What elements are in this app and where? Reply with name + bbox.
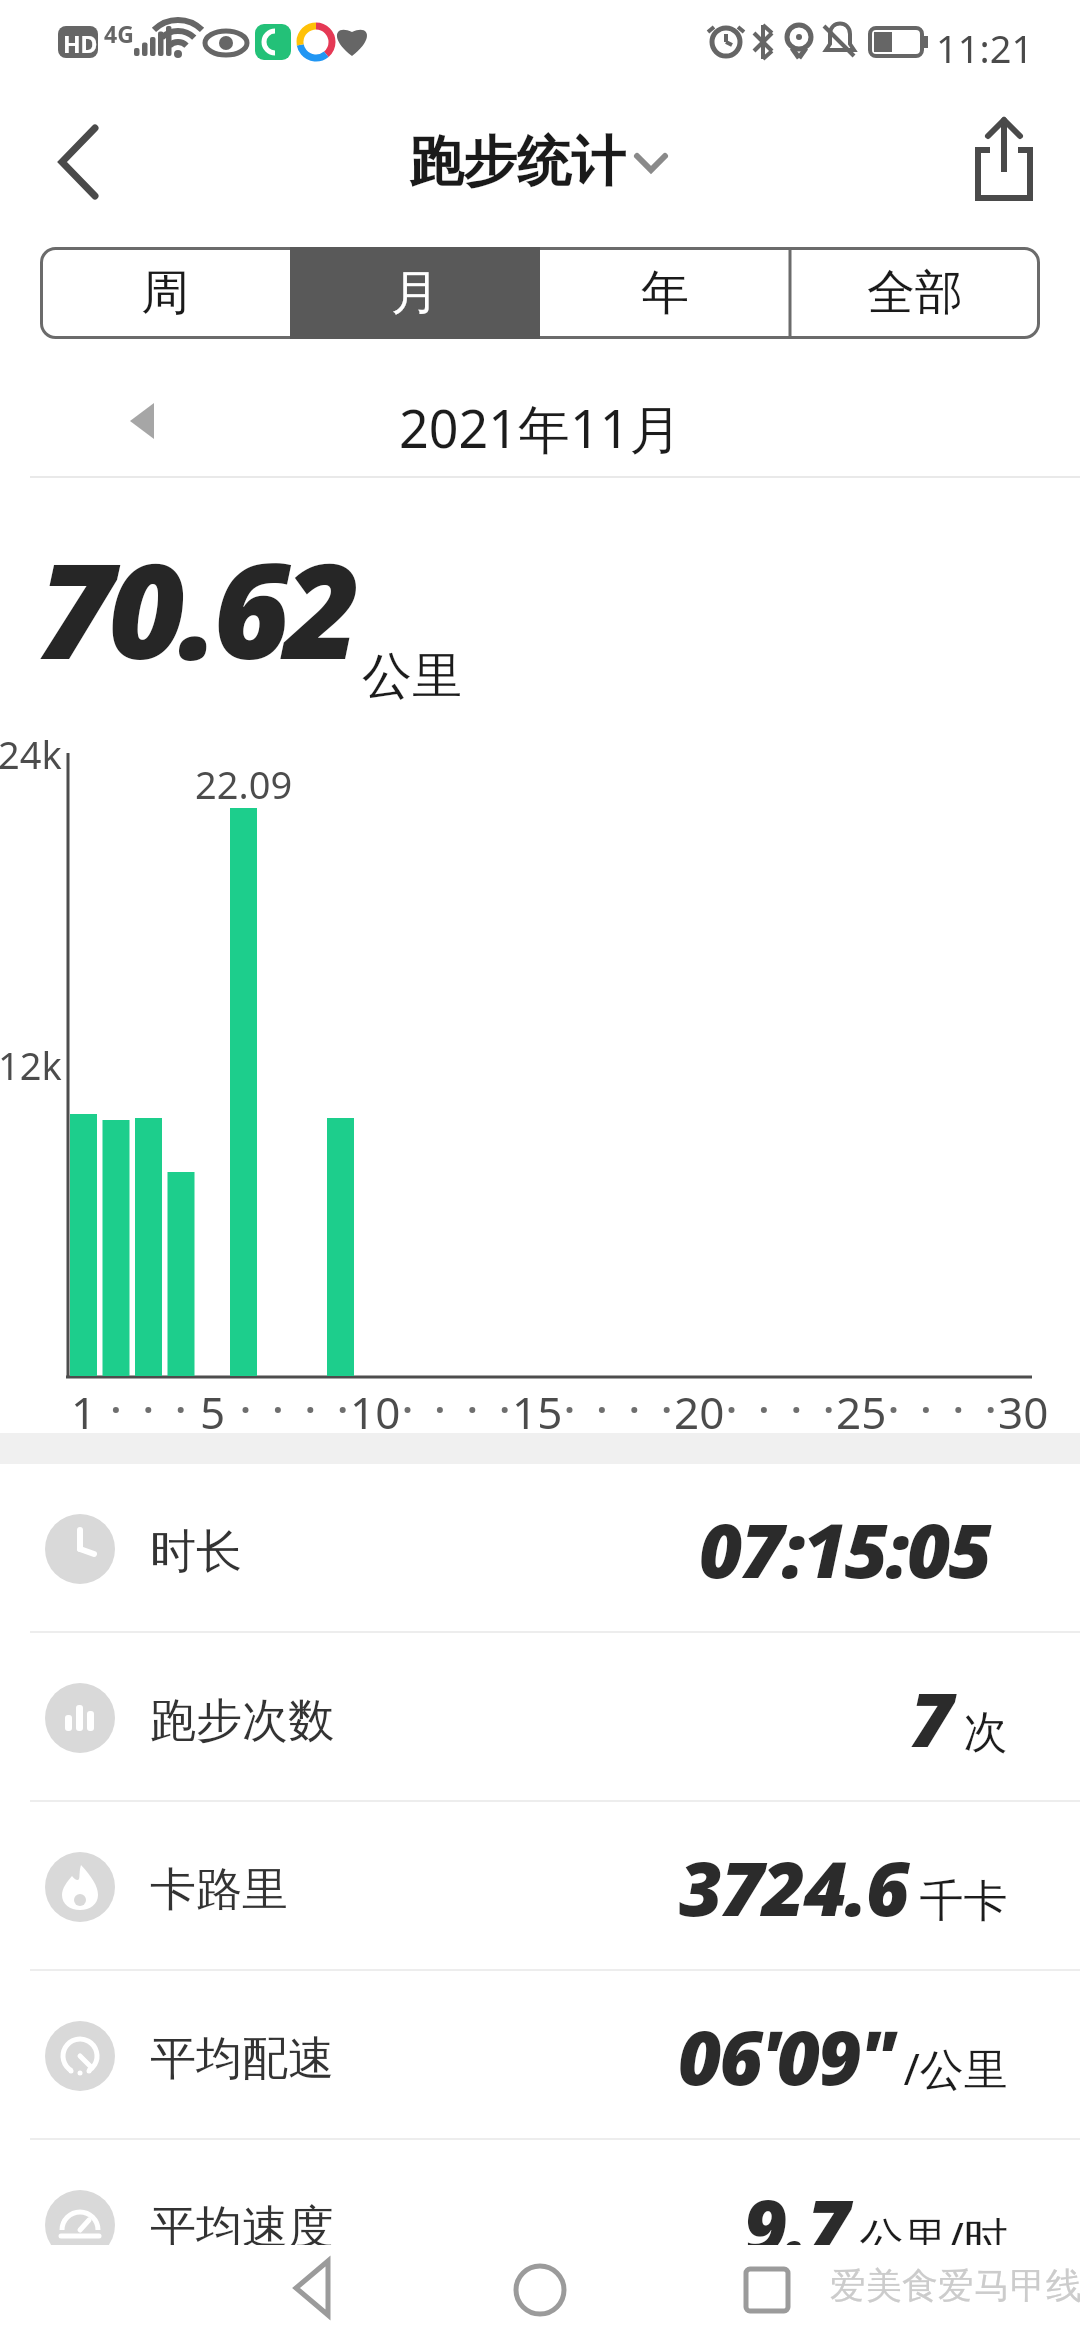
staticText: 5 <box>200 1382 226 1442</box>
staticText: 周 <box>141 263 189 323</box>
staticText: 11:21 <box>936 22 1034 74</box>
button[interactable] <box>110 385 180 455</box>
staticText: 时长 <box>150 1523 242 1581</box>
staticText: HD <box>63 28 98 59</box>
staticText: 公里 <box>362 645 462 708</box>
staticText: 爱美食爱马甲线 <box>830 2263 1080 2308</box>
staticText: 公里/时 <box>848 2207 1008 2267</box>
staticText: 年 <box>641 263 689 323</box>
button[interactable]: 年 <box>540 247 790 339</box>
staticText: 7 <box>910 1667 952 1769</box>
button[interactable]: 平均速度 <box>0 2140 1080 2309</box>
staticText: 跑步次数 <box>150 1692 334 1750</box>
staticText: 4G <box>104 18 134 49</box>
button[interactable]: 跑步次数 <box>0 1633 1080 1802</box>
button[interactable] <box>30 110 140 220</box>
button[interactable] <box>732 2253 802 2323</box>
staticText: 12k <box>0 1039 62 1091</box>
staticText: 10 <box>350 1382 401 1442</box>
staticText: 22.09 <box>195 758 293 810</box>
button[interactable] <box>280 2253 350 2323</box>
staticText: 2021年11月 <box>399 392 682 463</box>
staticText: 平均配速 <box>150 2030 334 2088</box>
button[interactable] <box>960 110 1050 210</box>
staticText: 1 <box>71 1382 97 1442</box>
button[interactable] <box>505 2253 575 2323</box>
staticText: 20 <box>674 1382 725 1442</box>
button[interactable]: 月 <box>290 247 540 339</box>
staticText: 25 <box>836 1382 887 1442</box>
button[interactable]: 全部 <box>790 247 1040 339</box>
button[interactable]: 时长 <box>0 1464 1080 1633</box>
staticText: 卡路里 <box>150 1861 288 1919</box>
staticText: 07:15:05 <box>699 1498 990 1600</box>
staticText: 15 <box>512 1382 563 1442</box>
staticText: 9.7 <box>744 2174 848 2276</box>
staticText: 平均速度 <box>150 2199 334 2257</box>
staticText: 24k <box>0 728 62 780</box>
staticText: 06'09" <box>678 2005 892 2107</box>
staticText: 全部 <box>867 263 963 323</box>
staticText: 30 <box>998 1382 1049 1442</box>
staticText: 70.62 <box>38 518 355 698</box>
staticText: /公里 <box>892 2038 1008 2098</box>
button[interactable]: 周 <box>40 247 290 339</box>
staticText: 月 <box>391 263 439 323</box>
button[interactable]: 卡路里 <box>0 1802 1080 1971</box>
staticText: 3724.6 <box>679 1836 908 1938</box>
staticText: 跑步统计 <box>409 128 625 196</box>
staticText: 次 <box>952 1700 1008 1760</box>
button[interactable]: 平均配速 <box>0 1971 1080 2140</box>
staticText: 千卡 <box>908 1869 1008 1929</box>
